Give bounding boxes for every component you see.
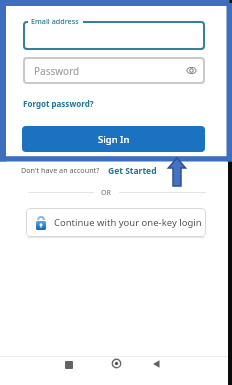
- button[interactable]: [153, 360, 160, 368]
- staticText: Email address: [31, 16, 79, 26]
- button[interactable]: [23, 21, 205, 50]
- button[interactable]: [65, 361, 73, 369]
- button[interactable]: Forgot password?: [23, 98, 94, 109]
- button[interactable]: Get Started: [108, 165, 157, 177]
- staticText: OR: [101, 188, 111, 198]
- button[interactable]: [111, 358, 122, 369]
- staticText: Continue with your one-key login: [54, 216, 202, 229]
- button[interactable]: Password: [23, 57, 205, 84]
- staticText: Forgot password?: [23, 98, 94, 109]
- staticText: Sign In: [98, 133, 130, 146]
- button[interactable]: Sign In: [22, 126, 205, 152]
- staticText: Password: [34, 64, 80, 78]
- button[interactable]: Continue with your one-key login: [26, 208, 206, 237]
- staticText: Get Started: [108, 165, 157, 177]
- staticText: Don't have an account?: [21, 165, 100, 175]
